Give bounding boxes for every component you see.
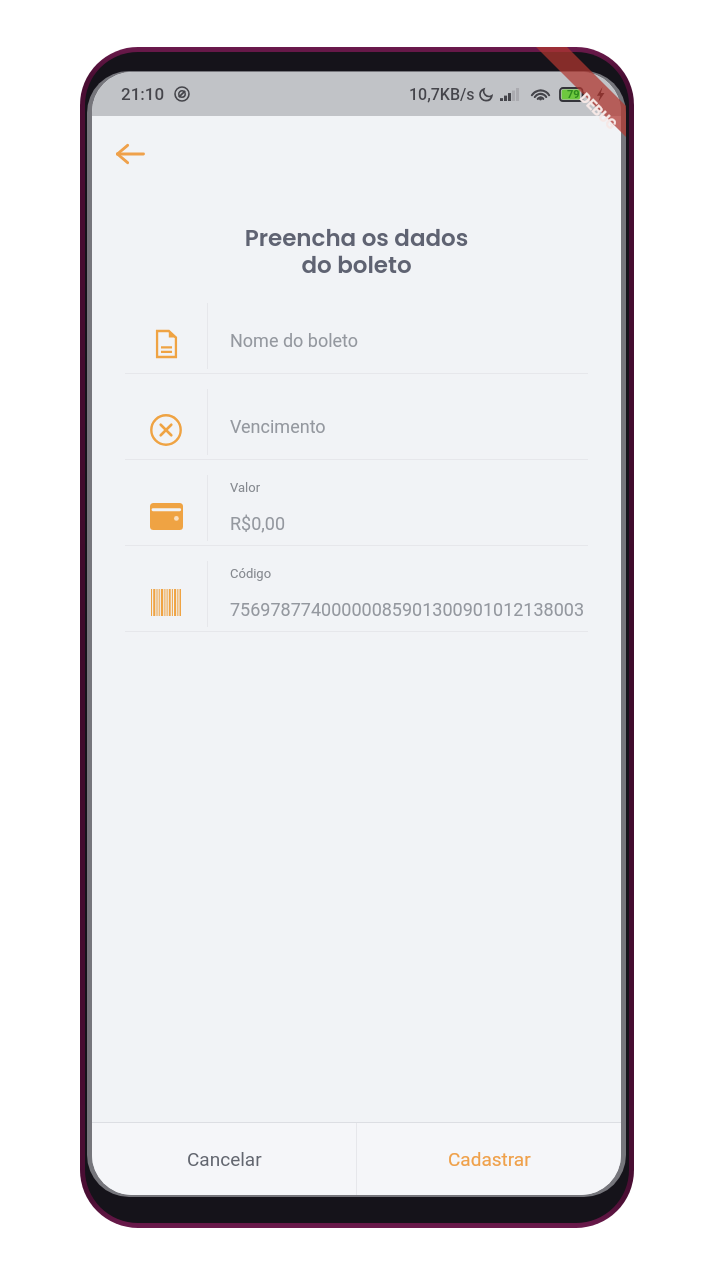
staticText: Nome do boleto (230, 330, 359, 351)
staticText: 21:10 (121, 84, 165, 104)
button[interactable]: Valor (92, 460, 621, 546)
staticText: Cancelar (187, 1148, 262, 1170)
button[interactable]: Vencimento (92, 374, 621, 460)
staticText: R$0,00 (230, 513, 286, 534)
staticText: Valor (230, 480, 261, 495)
staticText: DEBUG (577, 89, 620, 132)
staticText: 7569787740000008590130090101213800345 (230, 599, 592, 620)
staticText: Preencha os dados do boleto (92, 222, 621, 281)
button[interactable]: Nome do boleto (92, 288, 621, 374)
staticText: 10,7KB/s (409, 85, 475, 104)
staticText: Cadastrar (448, 1148, 531, 1170)
button[interactable]: Back (109, 133, 151, 175)
staticText: 79 (567, 88, 580, 101)
staticText: Vencimento (230, 416, 326, 437)
button[interactable]: Cancelar (92, 1123, 356, 1195)
button[interactable]: Cadastrar (357, 1123, 621, 1195)
button[interactable]: Código (92, 546, 621, 632)
staticText: Código (230, 566, 272, 581)
